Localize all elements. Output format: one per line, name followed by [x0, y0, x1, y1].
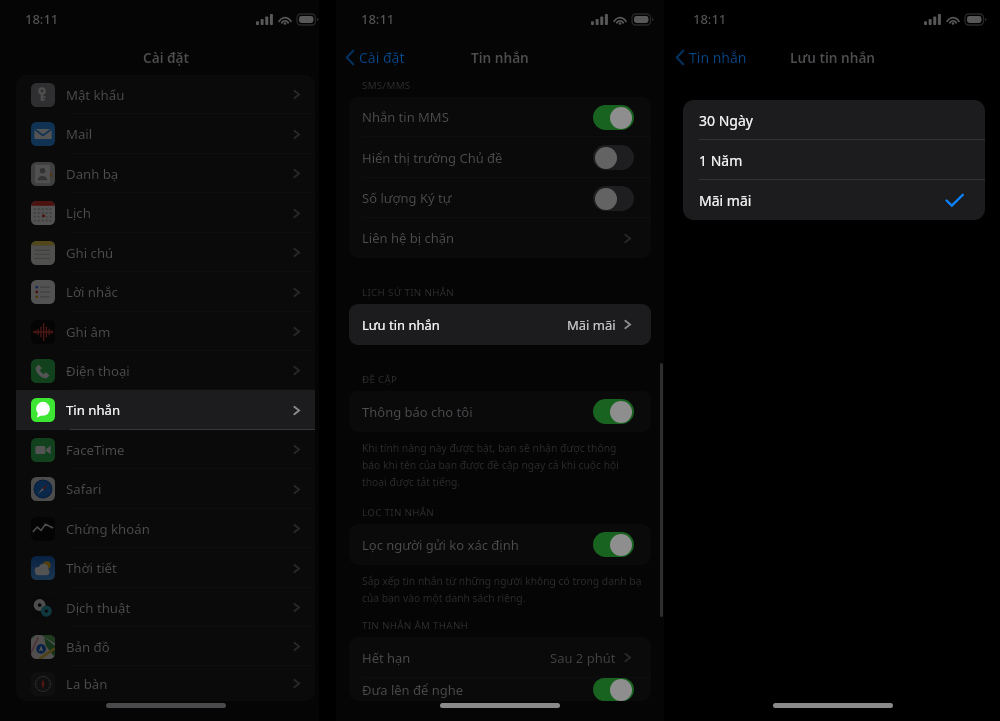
button[interactable]: Mãi mãi: [683, 180, 985, 220]
staticText: Đưa lên để nghe: [362, 681, 464, 699]
button[interactable]: Toggle on: [593, 678, 634, 701]
button[interactable]: Dịch thuật: [16, 588, 315, 627]
staticText: Chứng khoán: [66, 520, 150, 538]
button[interactable]: Ghi chú: [16, 233, 315, 272]
staticText: Điện thoại: [66, 362, 130, 380]
staticText: Mail: [66, 125, 93, 143]
button[interactable]: Lịch: [16, 193, 315, 233]
button[interactable]: Thời tiết: [16, 548, 315, 588]
button[interactable]: Liên hệ bị chặn: [349, 218, 651, 258]
button[interactable]: Toggle on: [593, 399, 634, 424]
staticText: LỌC TIN NHẮN: [362, 506, 435, 519]
button[interactable]: Lưu tin nhắn: [349, 304, 651, 345]
button[interactable]: Bản đồ: [16, 627, 315, 666]
staticText: 1 Năm: [699, 151, 743, 170]
staticText: Lịch: [66, 204, 91, 222]
staticText: Mãi mãi: [567, 316, 616, 334]
button[interactable]: Ghi âm: [16, 312, 315, 351]
staticText: La bàn: [66, 675, 108, 693]
staticText: LỊCH SỬ TIN NHẮN: [362, 286, 454, 299]
staticText: Mật khẩu: [66, 86, 125, 104]
button[interactable]: Danh bạ: [16, 154, 315, 193]
button[interactable]: Tin nhắn: [16, 390, 315, 430]
button[interactable]: 1 Năm: [683, 140, 985, 180]
button[interactable]: Toggle on: [593, 532, 634, 557]
staticText: Cài đặt: [359, 48, 405, 67]
button[interactable]: Mật khẩu: [16, 75, 315, 114]
staticText: Ghi chú: [66, 244, 114, 262]
staticText: Số lượng Ký tự: [362, 189, 452, 207]
staticText: Thông báo cho tôi: [362, 403, 473, 421]
staticText: Sắp xếp tin nhắn từ những người không có…: [362, 574, 643, 605]
button[interactable]: Điện thoại: [16, 351, 315, 390]
staticText: Lưu tin nhắn: [362, 316, 440, 334]
staticText: FaceTime: [66, 441, 125, 459]
staticText: Sau 2 phút: [550, 649, 616, 667]
button[interactable]: Lọc người gửi ko xác định: [349, 524, 651, 565]
staticText: 30 Ngày: [699, 111, 753, 130]
staticText: SMS/MMS: [362, 79, 411, 92]
button[interactable]: Chứng khoán: [16, 509, 315, 548]
button[interactable]: Hiển thị trường Chủ đề: [349, 137, 651, 178]
staticText: Khi tính năng này được bật, bạn sẽ nhận …: [362, 441, 626, 489]
staticText: Lưu tin nhắn: [790, 48, 876, 67]
staticText: 18:11: [693, 10, 727, 28]
button[interactable]: La bàn: [16, 666, 315, 701]
staticText: Safari: [66, 480, 102, 498]
staticText: Thời tiết: [66, 559, 117, 577]
staticText: Lọc người gửi ko xác định: [362, 536, 519, 554]
staticText: Hiển thị trường Chủ đề: [362, 149, 503, 167]
button[interactable]: 30 Ngày: [683, 100, 985, 140]
button[interactable]: Toggle off: [593, 145, 634, 170]
staticText: Tin nhắn: [689, 48, 747, 67]
staticText: Danh bạ: [66, 165, 119, 183]
staticText: 18:11: [25, 10, 59, 28]
button[interactable]: Toggle off: [593, 186, 634, 211]
button[interactable]: Safari: [16, 469, 315, 509]
staticText: Tin nhắn: [66, 401, 121, 419]
button[interactable]: FaceTime: [16, 430, 315, 469]
button[interactable]: Nhắn tin MMS: [349, 97, 651, 137]
staticText: ĐỀ CẬP: [362, 373, 398, 386]
staticText: TIN NHẮN ÂM THANH: [362, 619, 469, 632]
button[interactable]: Hết hạn: [349, 637, 651, 678]
staticText: Cài đặt: [143, 48, 190, 67]
staticText: Dịch thuật: [66, 599, 131, 617]
staticText: 18:11: [361, 10, 395, 28]
button[interactable]: Thông báo cho tôi: [349, 391, 651, 432]
button[interactable]: Toggle on: [593, 105, 634, 130]
button[interactable]: Back to Tin nhắn: [675, 48, 747, 67]
staticText: Hết hạn: [362, 649, 411, 667]
staticText: Ghi âm: [66, 323, 111, 341]
button[interactable]: Số lượng Ký tự: [349, 178, 651, 218]
button[interactable]: Đưa lên để nghe: [349, 678, 651, 701]
staticText: Tin nhắn: [471, 48, 529, 67]
staticText: Mãi mãi: [699, 191, 752, 210]
staticText: Nhắn tin MMS: [362, 108, 449, 126]
staticText: Liên hệ bị chặn: [362, 229, 454, 247]
button[interactable]: Lời nhắc: [16, 272, 315, 312]
staticText: Bản đồ: [66, 638, 110, 656]
button[interactable]: Mail: [16, 114, 315, 154]
button[interactable]: Back to Cài đặt: [345, 48, 405, 67]
staticText: Lời nhắc: [66, 283, 118, 301]
